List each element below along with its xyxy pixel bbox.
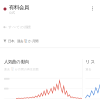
button[interactable]: 日本、過去 12 か月間 [0,39,100,44]
staticText: 過去 [85,68,91,71]
staticText: すべての指標 [8,25,30,29]
staticText: 日本、過去 12 か月間 [8,39,38,43]
staticText: 公式 [9,11,15,15]
button[interactable]: すべての指標 [0,25,100,30]
staticText: 人気曲の動向 [4,59,29,65]
staticText: 過去 12 か月間の再生回数 [4,68,39,71]
staticText: リス [85,59,95,65]
staticText: 有料会員 [9,4,29,11]
button[interactable]: More options [89,4,96,13]
